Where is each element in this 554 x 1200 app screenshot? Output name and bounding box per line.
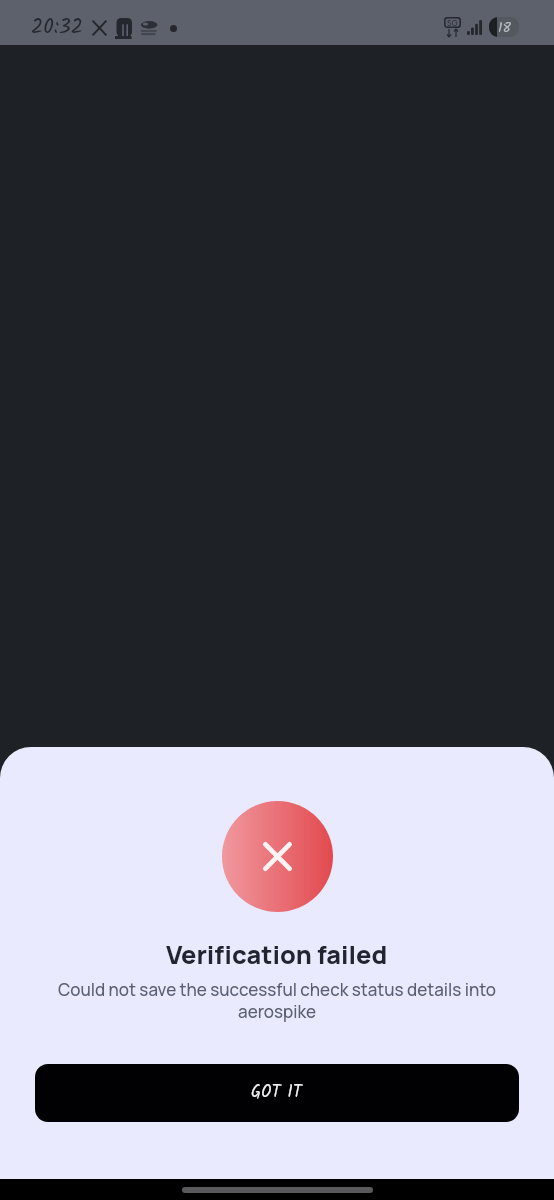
staticText: 20:32 xyxy=(31,11,84,44)
staticText: Verification failed xyxy=(166,937,388,972)
staticText: 5G xyxy=(447,17,458,28)
staticText: Could not save the successful check stat… xyxy=(25,978,529,1023)
button[interactable]: GOT IT xyxy=(35,1064,519,1122)
other: Failed xyxy=(263,842,292,871)
staticText: 18 xyxy=(498,17,511,37)
staticText: GOT IT xyxy=(251,1080,303,1106)
